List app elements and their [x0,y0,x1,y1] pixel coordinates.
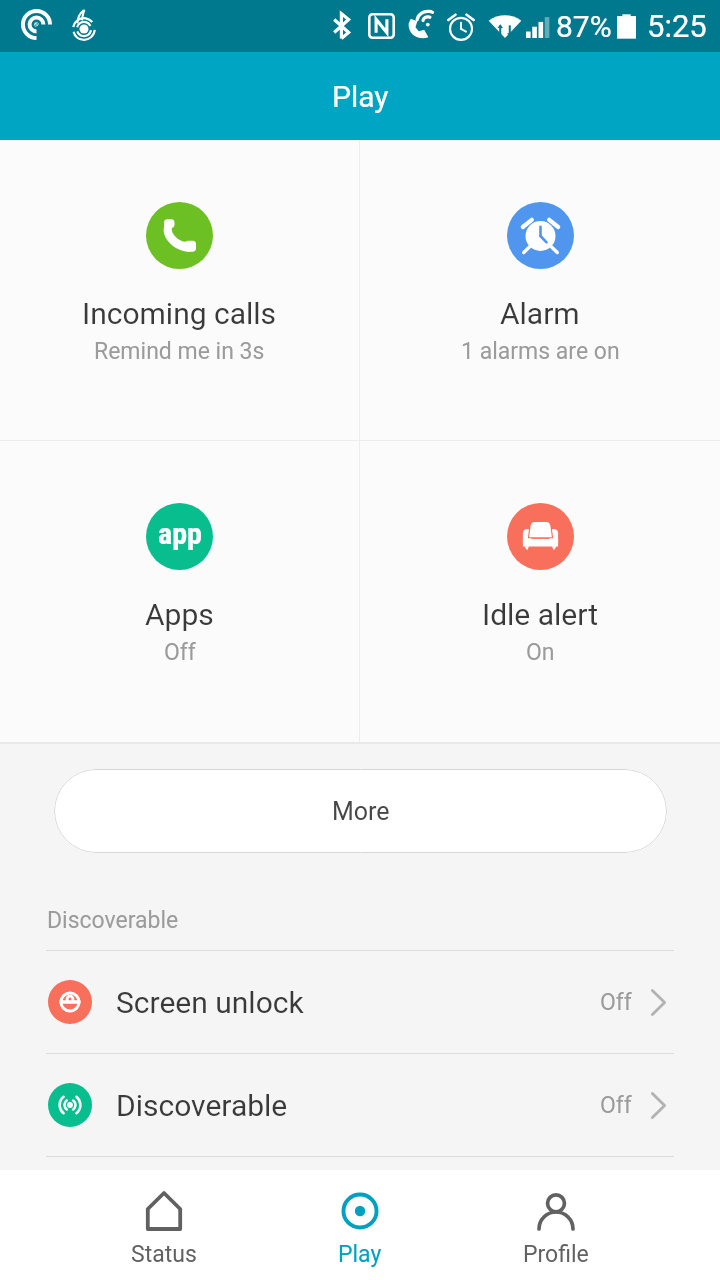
button[interactable]: Incoming calls [0,140,359,440]
staticText: 5:25 [647,8,707,44]
button[interactable]: Screen unlock [0,951,720,1053]
staticText: 87% [556,9,612,44]
staticText: Incoming calls [82,296,277,331]
button[interactable]: app [0,441,359,742]
staticText: Off [600,989,632,1016]
staticText: app [158,516,202,551]
staticText: Alarm [500,296,580,331]
staticText: Screen unlock [116,985,304,1020]
staticText: More [332,797,390,826]
staticText: On [526,639,555,666]
staticText: Play [332,79,389,114]
staticText: 1 alarms are on [461,338,620,365]
staticText: Apps [145,597,214,632]
button[interactable]: Profile [458,1170,654,1280]
button[interactable]: Discoverable [0,1054,720,1156]
staticText: Off [164,639,196,666]
staticText: Idle alert [482,597,598,632]
staticText: Discoverable [47,907,179,934]
button[interactable]: Alarm [360,140,720,440]
button[interactable]: Status [66,1170,262,1280]
button[interactable]: Play [262,1170,458,1280]
staticText: Discoverable [116,1088,288,1123]
button[interactable]: Idle alert [360,441,720,742]
staticText: Status [131,1241,197,1268]
staticText: Remind me in 3s [94,338,265,365]
staticText: Profile [523,1241,589,1268]
staticText: Play [338,1241,382,1268]
button[interactable]: More [54,769,667,853]
staticText: Off [600,1092,632,1119]
